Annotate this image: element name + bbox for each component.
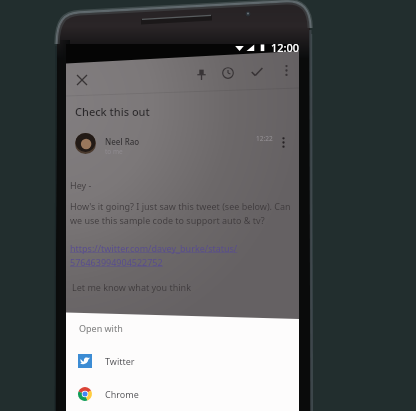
staticText: Open with xyxy=(79,322,123,334)
staticText: Chrome xyxy=(105,388,139,400)
button[interactable]: Snooze xyxy=(215,60,241,86)
button[interactable]: Message options xyxy=(276,135,290,149)
button[interactable]: Close xyxy=(69,67,95,93)
button[interactable]: Chrome xyxy=(66,382,299,406)
staticText: https://twitter.com/davey_burke/status/ xyxy=(70,242,238,254)
staticText: Hey - xyxy=(70,179,92,191)
staticText: Twitter xyxy=(105,355,135,367)
staticText: 12:22 xyxy=(256,134,273,143)
staticText: we use this sample code to support auto … xyxy=(70,214,265,226)
button[interactable]: More options xyxy=(273,57,299,83)
staticText: 576463994904522752 xyxy=(70,256,163,268)
staticText: Let me know what you think xyxy=(72,281,191,293)
button[interactable]: Twitter xyxy=(66,349,299,373)
staticText: Neel Rao xyxy=(105,136,140,147)
button[interactable]: Done xyxy=(244,59,270,85)
button[interactable]: Attach xyxy=(188,61,214,87)
staticText: Check this out xyxy=(75,104,150,119)
staticText: How's it going? I just saw this tweet (s… xyxy=(70,200,291,212)
staticText: to me xyxy=(105,147,123,156)
staticText: 12:00 xyxy=(271,40,300,54)
